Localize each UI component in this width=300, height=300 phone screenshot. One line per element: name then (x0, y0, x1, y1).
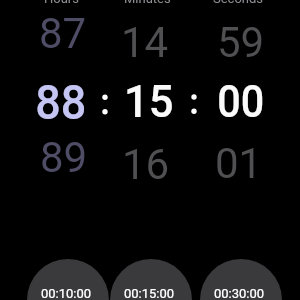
staticText: 00:15:00 (124, 286, 175, 300)
staticText: 89 (40, 133, 88, 182)
staticText: 14 (121, 18, 169, 67)
staticText: Hours (44, 0, 79, 6)
staticText: 15 (124, 77, 174, 128)
staticText: 87 (39, 9, 87, 58)
staticText: 00:30:00 (214, 286, 265, 300)
staticText: 01 (215, 139, 263, 188)
staticText: 59 (217, 18, 265, 67)
staticText: 16 (122, 140, 170, 189)
staticText: Minutes (124, 0, 171, 6)
staticText: Seconds (213, 0, 264, 6)
staticText: 88 (35, 74, 87, 131)
staticText: 00 (217, 77, 265, 128)
staticText: 00:10:00 (41, 286, 92, 300)
